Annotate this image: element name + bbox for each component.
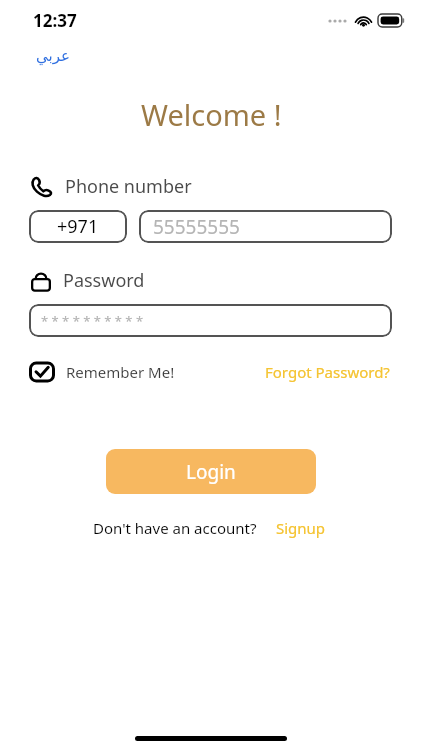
staticText: Remember Me! [66, 362, 175, 382]
staticText: +971 [57, 214, 99, 239]
staticText: 55555555 [153, 214, 240, 240]
button[interactable]: Forgot Password? [263, 359, 392, 385]
staticText: Forgot Password? [265, 362, 390, 382]
staticText: Login [186, 459, 236, 485]
staticText: عربي [36, 47, 70, 64]
staticText: Password [63, 268, 145, 293]
staticText: Welcome ! [141, 95, 282, 134]
button[interactable]: +971 [29, 210, 127, 243]
button[interactable]: عربي [30, 44, 76, 67]
staticText: Signup [276, 518, 326, 538]
staticText: 12:37 [33, 9, 77, 32]
staticText: * * * * * * * * * * [41, 312, 144, 330]
staticText: Don't have an account? [93, 518, 257, 538]
staticText: Phone number [65, 174, 192, 199]
button[interactable]: Remember Me! [29, 357, 175, 387]
button[interactable]: Login [106, 449, 316, 494]
button[interactable]: * * * * * * * * * * [29, 304, 392, 337]
button[interactable]: 55555555 [139, 210, 392, 243]
button[interactable]: Signup [273, 515, 329, 541]
